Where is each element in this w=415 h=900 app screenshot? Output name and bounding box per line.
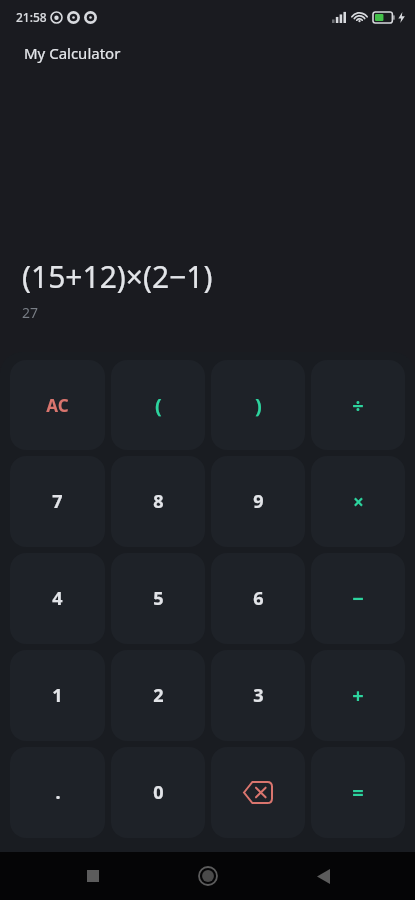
staticText: (15+12)×(2−1)	[22, 256, 213, 297]
staticText: 5	[153, 586, 164, 611]
staticText: (	[155, 392, 162, 419]
button[interactable]: +	[311, 650, 405, 741]
staticText: 27	[22, 303, 39, 322]
button[interactable]: −	[311, 553, 405, 644]
staticText: 21:58	[16, 9, 47, 25]
button[interactable]: Back	[300, 853, 346, 899]
button[interactable]: ÷	[311, 360, 405, 450]
staticText: 0	[153, 780, 164, 805]
button[interactable]: 2	[111, 650, 205, 741]
button[interactable]: 7	[10, 456, 105, 547]
staticText: 7	[52, 489, 63, 514]
staticText: )	[255, 392, 262, 419]
button[interactable]: =	[311, 747, 405, 838]
staticText: 9	[253, 489, 264, 514]
button[interactable]: 8	[111, 456, 205, 547]
staticText: .	[55, 780, 61, 805]
button[interactable]: 9	[211, 456, 305, 547]
staticText: AC	[46, 394, 69, 417]
staticText: 3	[253, 683, 264, 708]
button[interactable]: )	[211, 360, 305, 450]
staticText: ×	[353, 489, 364, 515]
button[interactable]: 6	[211, 553, 305, 644]
button[interactable]: 1	[10, 650, 105, 741]
staticText: =	[352, 779, 364, 806]
button[interactable]: AC	[10, 360, 105, 450]
button[interactable]: 5	[111, 553, 205, 644]
button[interactable]: .	[10, 747, 105, 838]
staticText: 2	[153, 683, 164, 708]
staticText: 1	[52, 683, 63, 708]
staticText: −	[352, 585, 364, 612]
staticText: 8	[153, 489, 164, 514]
button[interactable]: (	[111, 360, 205, 450]
button[interactable]: Recents	[70, 853, 116, 899]
button[interactable]: 3	[211, 650, 305, 741]
button[interactable]: Backspace	[211, 747, 305, 838]
staticText: +	[352, 682, 364, 709]
staticText: 4	[52, 586, 63, 611]
staticText: 6	[253, 586, 264, 611]
button[interactable]: ×	[311, 456, 405, 547]
staticText: ÷	[352, 392, 364, 419]
button[interactable]: Home	[185, 853, 231, 899]
staticText: My Calculator	[24, 43, 121, 63]
button[interactable]: 4	[10, 553, 105, 644]
button[interactable]: 0	[111, 747, 205, 838]
